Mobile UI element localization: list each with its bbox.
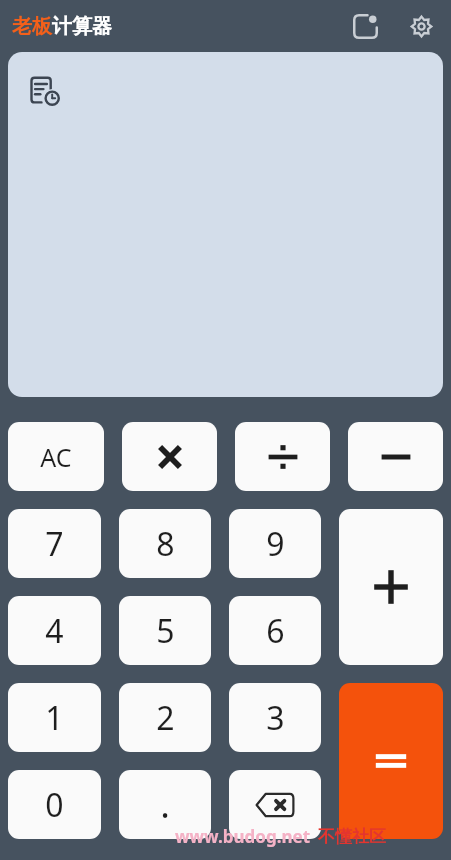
button[interactable]: Equals (339, 683, 443, 839)
staticText: 5 (156, 609, 175, 653)
staticText: 2 (156, 696, 175, 740)
staticText: 3 (266, 696, 285, 740)
staticText: . (160, 780, 170, 829)
button[interactable]: Backspace (229, 770, 321, 839)
staticText: 0 (45, 783, 64, 827)
staticText: 老板计算器 (12, 14, 112, 39)
button[interactable]: 1 (8, 683, 101, 752)
button[interactable]: 2 (119, 683, 211, 752)
button[interactable]: History (28, 74, 62, 108)
button[interactable]: 3 (229, 683, 321, 752)
staticText: AC (40, 440, 72, 474)
staticText: www.budog.net (175, 825, 311, 848)
staticText: 8 (156, 522, 175, 566)
staticText: 9 (266, 522, 285, 566)
button[interactable]: 7 (8, 509, 101, 578)
button[interactable]: Settings (399, 4, 443, 48)
staticText: 6 (266, 609, 285, 653)
button[interactable]: History (8, 52, 443, 397)
button[interactable]: 8 (119, 509, 211, 578)
button[interactable]: . (119, 770, 211, 839)
staticText: 不懂社区 (318, 826, 386, 847)
button[interactable]: Add (339, 509, 443, 665)
button[interactable]: Subtract (348, 422, 443, 491)
button[interactable]: 0 (8, 770, 101, 839)
button[interactable]: Notes (343, 4, 387, 48)
button[interactable]: Divide (235, 422, 330, 491)
button[interactable]: 6 (229, 596, 321, 665)
button[interactable]: 4 (8, 596, 101, 665)
button[interactable]: 5 (119, 596, 211, 665)
staticText: 7 (45, 522, 64, 566)
button[interactable]: 9 (229, 509, 321, 578)
button[interactable]: AC (8, 422, 104, 491)
staticText: 4 (45, 609, 64, 653)
staticText: 1 (45, 696, 64, 740)
button[interactable]: Multiply (122, 422, 217, 491)
